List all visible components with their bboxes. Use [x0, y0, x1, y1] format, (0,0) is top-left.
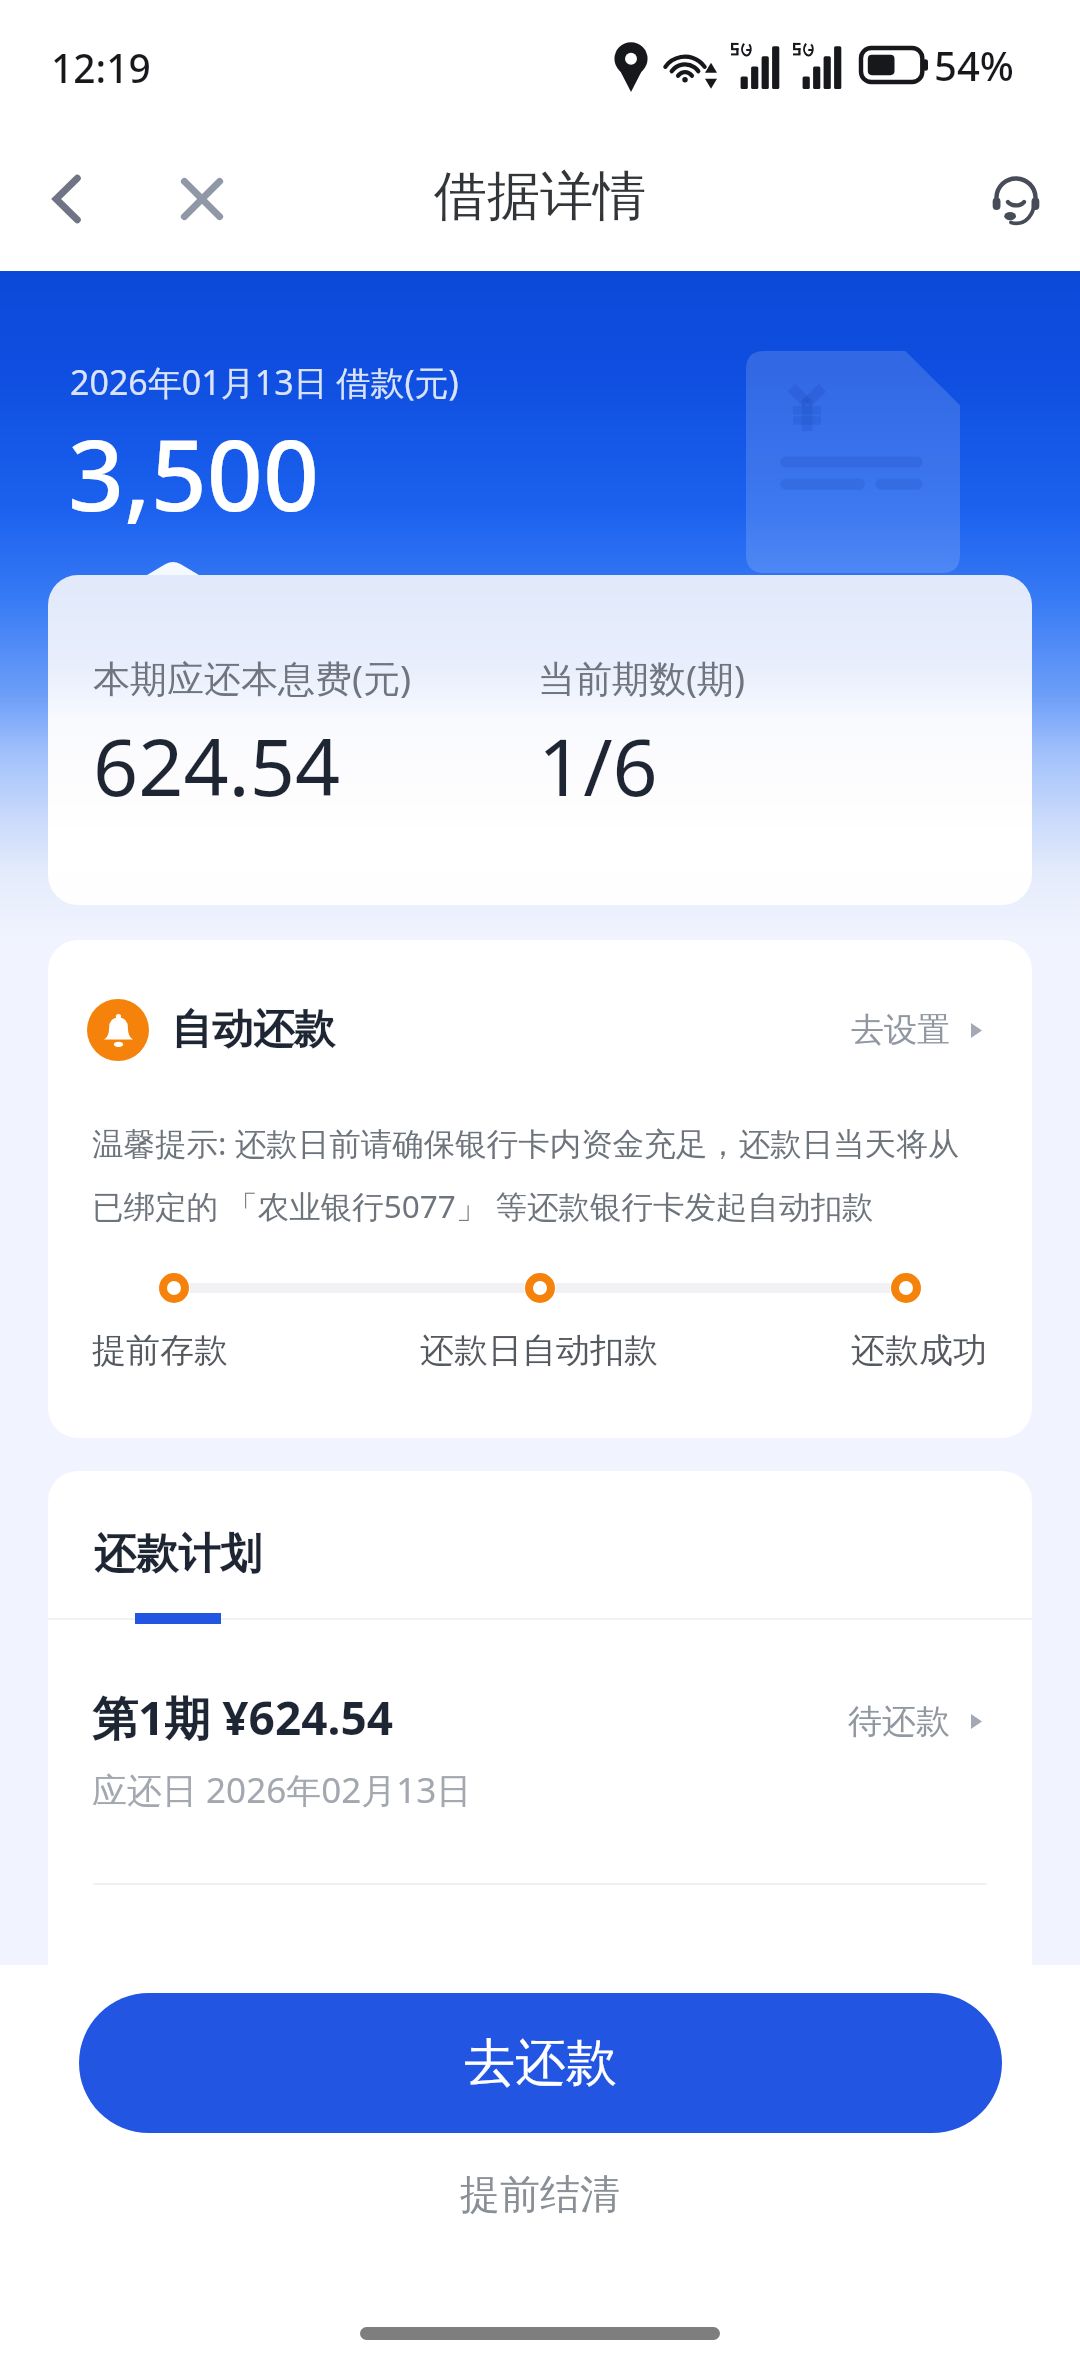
staticText: 提前结清 — [460, 2169, 620, 2219]
button[interactable]: Customer service — [972, 154, 1060, 242]
staticText: 当前期数(期) — [538, 652, 746, 703]
staticText: 1/6 — [538, 712, 658, 820]
button[interactable]: 去还款 — [79, 1993, 1002, 2133]
button[interactable]: 去设置 — [851, 1009, 982, 1051]
staticText: 自动还款 — [171, 1004, 335, 1056]
staticText: 还款日自动扣款 — [420, 1329, 658, 1372]
staticText: 12:19 — [51, 41, 151, 94]
button[interactable]: 第1期 ¥624.54 — [92, 1686, 982, 1814]
staticText: 已绑定的 「农业银行5077」 等还款银行卡发起自动扣款 — [92, 1184, 874, 1227]
staticText: 去设置 — [851, 1009, 950, 1051]
staticText: 应还日 2026年02月13日 — [92, 1766, 472, 1814]
staticText: 3,500 — [68, 406, 319, 539]
button[interactable]: Close — [163, 160, 241, 238]
staticText: 2026年01月13日 借款(元) — [70, 359, 459, 405]
button[interactable]: 提前结清 — [0, 2147, 1080, 2241]
staticText: 去还款 — [464, 2031, 617, 2095]
button[interactable]: Back — [30, 160, 108, 238]
staticText: 第1期 ¥624.54 — [92, 1686, 394, 1749]
staticText: 温馨提示: 还款日前请确保银行卡内资金充足，还款日当天将从 — [92, 1121, 960, 1164]
staticText: 提前存款 — [92, 1329, 228, 1372]
staticText: 本期应还本息费(元) — [93, 652, 412, 703]
staticText: 624.54 — [93, 712, 341, 820]
staticText: 还款计划 — [94, 1528, 262, 1581]
staticText: 待还款 — [848, 1700, 950, 1743]
staticText: 借据详情 — [434, 163, 646, 230]
staticText: 54% — [934, 38, 1014, 92]
staticText: 还款成功 — [851, 1329, 987, 1372]
